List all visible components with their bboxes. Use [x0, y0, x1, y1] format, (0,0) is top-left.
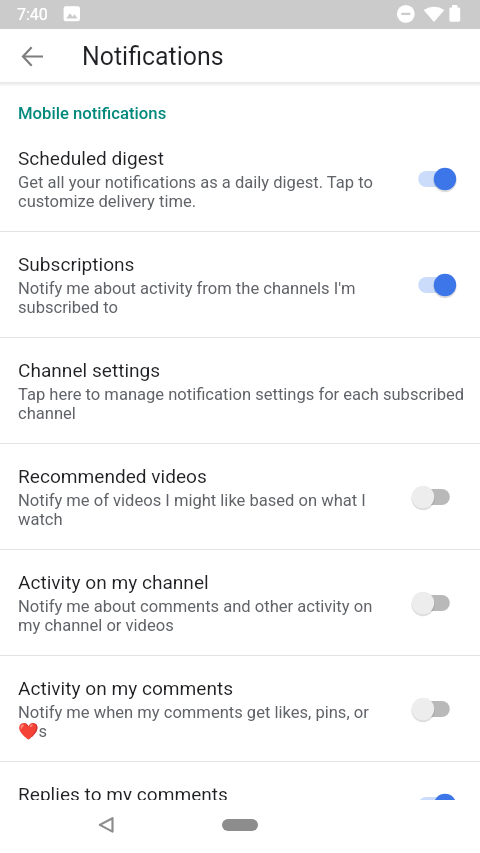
button[interactable]: Toggle: [410, 789, 458, 800]
staticText: 7:40: [17, 5, 48, 24]
button[interactable]: Channel settings: [0, 338, 480, 443]
staticText: Notifications: [82, 42, 224, 71]
button[interactable]: Activity on my comments: [0, 656, 480, 761]
staticText: Tap here to manage notification settings…: [18, 385, 467, 423]
button[interactable]: Back: [8, 32, 56, 80]
button[interactable]: Back: [83, 801, 131, 849]
staticText: Notify me about comments and other activ…: [18, 597, 386, 635]
button[interactable]: Toggle: [410, 269, 458, 301]
button[interactable]: Toggle: [410, 163, 458, 195]
staticText: Mobile notifications: [18, 104, 167, 124]
button[interactable]: Home: [222, 819, 258, 831]
button[interactable]: Replies to my comments: [0, 762, 480, 800]
staticText: Activity on my channel: [18, 571, 209, 593]
staticText: Replies to my comments: [18, 783, 228, 800]
staticText: Subscriptions: [18, 253, 135, 275]
button[interactable]: Activity on my channel: [0, 550, 480, 655]
staticText: Activity on my comments: [18, 677, 234, 699]
staticText: Notify me about activity from the channe…: [18, 279, 386, 317]
button[interactable]: Toggle: [410, 587, 458, 619]
button[interactable]: Toggle: [410, 693, 458, 725]
staticText: Notify me when my comments get likes, pi…: [18, 703, 386, 741]
button[interactable]: Toggle: [410, 481, 458, 513]
button[interactable]: Recommended videos: [0, 444, 480, 549]
staticText: Scheduled digest: [18, 147, 164, 169]
staticText: Channel settings: [18, 359, 161, 381]
button[interactable]: Subscriptions: [0, 232, 480, 337]
staticText: Notify me of videos I might like based o…: [18, 491, 386, 529]
staticText: Get all your notifications as a daily di…: [18, 173, 386, 211]
staticText: Recommended videos: [18, 465, 207, 487]
button[interactable]: Scheduled digest: [0, 126, 480, 231]
